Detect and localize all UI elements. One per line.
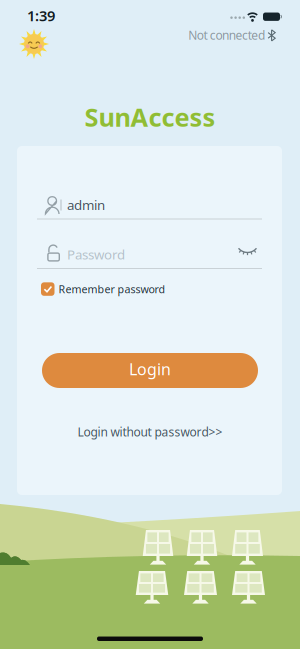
- button[interactable]: Show password: [237, 245, 258, 257]
- staticText: Login without password>>: [77, 424, 222, 440]
- staticText: admin: [67, 196, 105, 214]
- button[interactable]: Login without password>>: [77, 424, 222, 440]
- staticText: Not connected: [188, 27, 265, 43]
- staticText: Login: [129, 358, 171, 380]
- staticText: 1:39: [27, 6, 55, 25]
- button[interactable]: Remember password: [41, 282, 165, 296]
- button[interactable]: Login: [42, 353, 258, 388]
- staticText: Remember password: [58, 282, 165, 296]
- staticText: SunAccess: [84, 100, 215, 134]
- staticText: Password: [67, 245, 125, 263]
